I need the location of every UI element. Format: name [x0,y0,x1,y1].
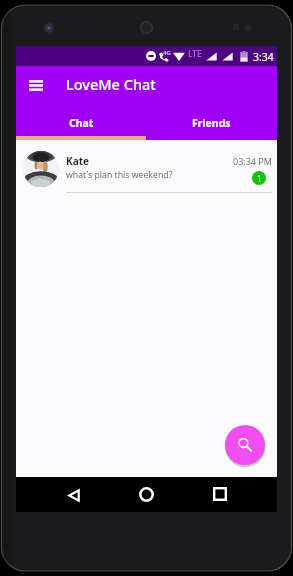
staticText: Chat [69,116,94,130]
staticText: Friends [192,116,231,130]
staticText: LTE [188,48,202,60]
staticText: LoveMe Chat [66,74,156,94]
button[interactable]: Recent apps [205,479,235,509]
button[interactable]: Chat [16,105,146,136]
staticText: Kate [66,154,89,168]
button[interactable]: Open navigation menu [23,72,49,98]
staticText: 03:34 PM [233,155,272,167]
button[interactable]: Back [59,480,89,510]
button[interactable]: Kate [16,140,277,192]
staticText: 3:34 [253,50,274,64]
staticText: what's plan this weekend? [66,169,173,181]
button[interactable]: Friends [146,105,277,136]
button[interactable]: Search [225,425,265,465]
button[interactable]: Home [131,479,161,509]
staticText: 4G [163,49,171,57]
staticText: 1 [257,173,262,184]
